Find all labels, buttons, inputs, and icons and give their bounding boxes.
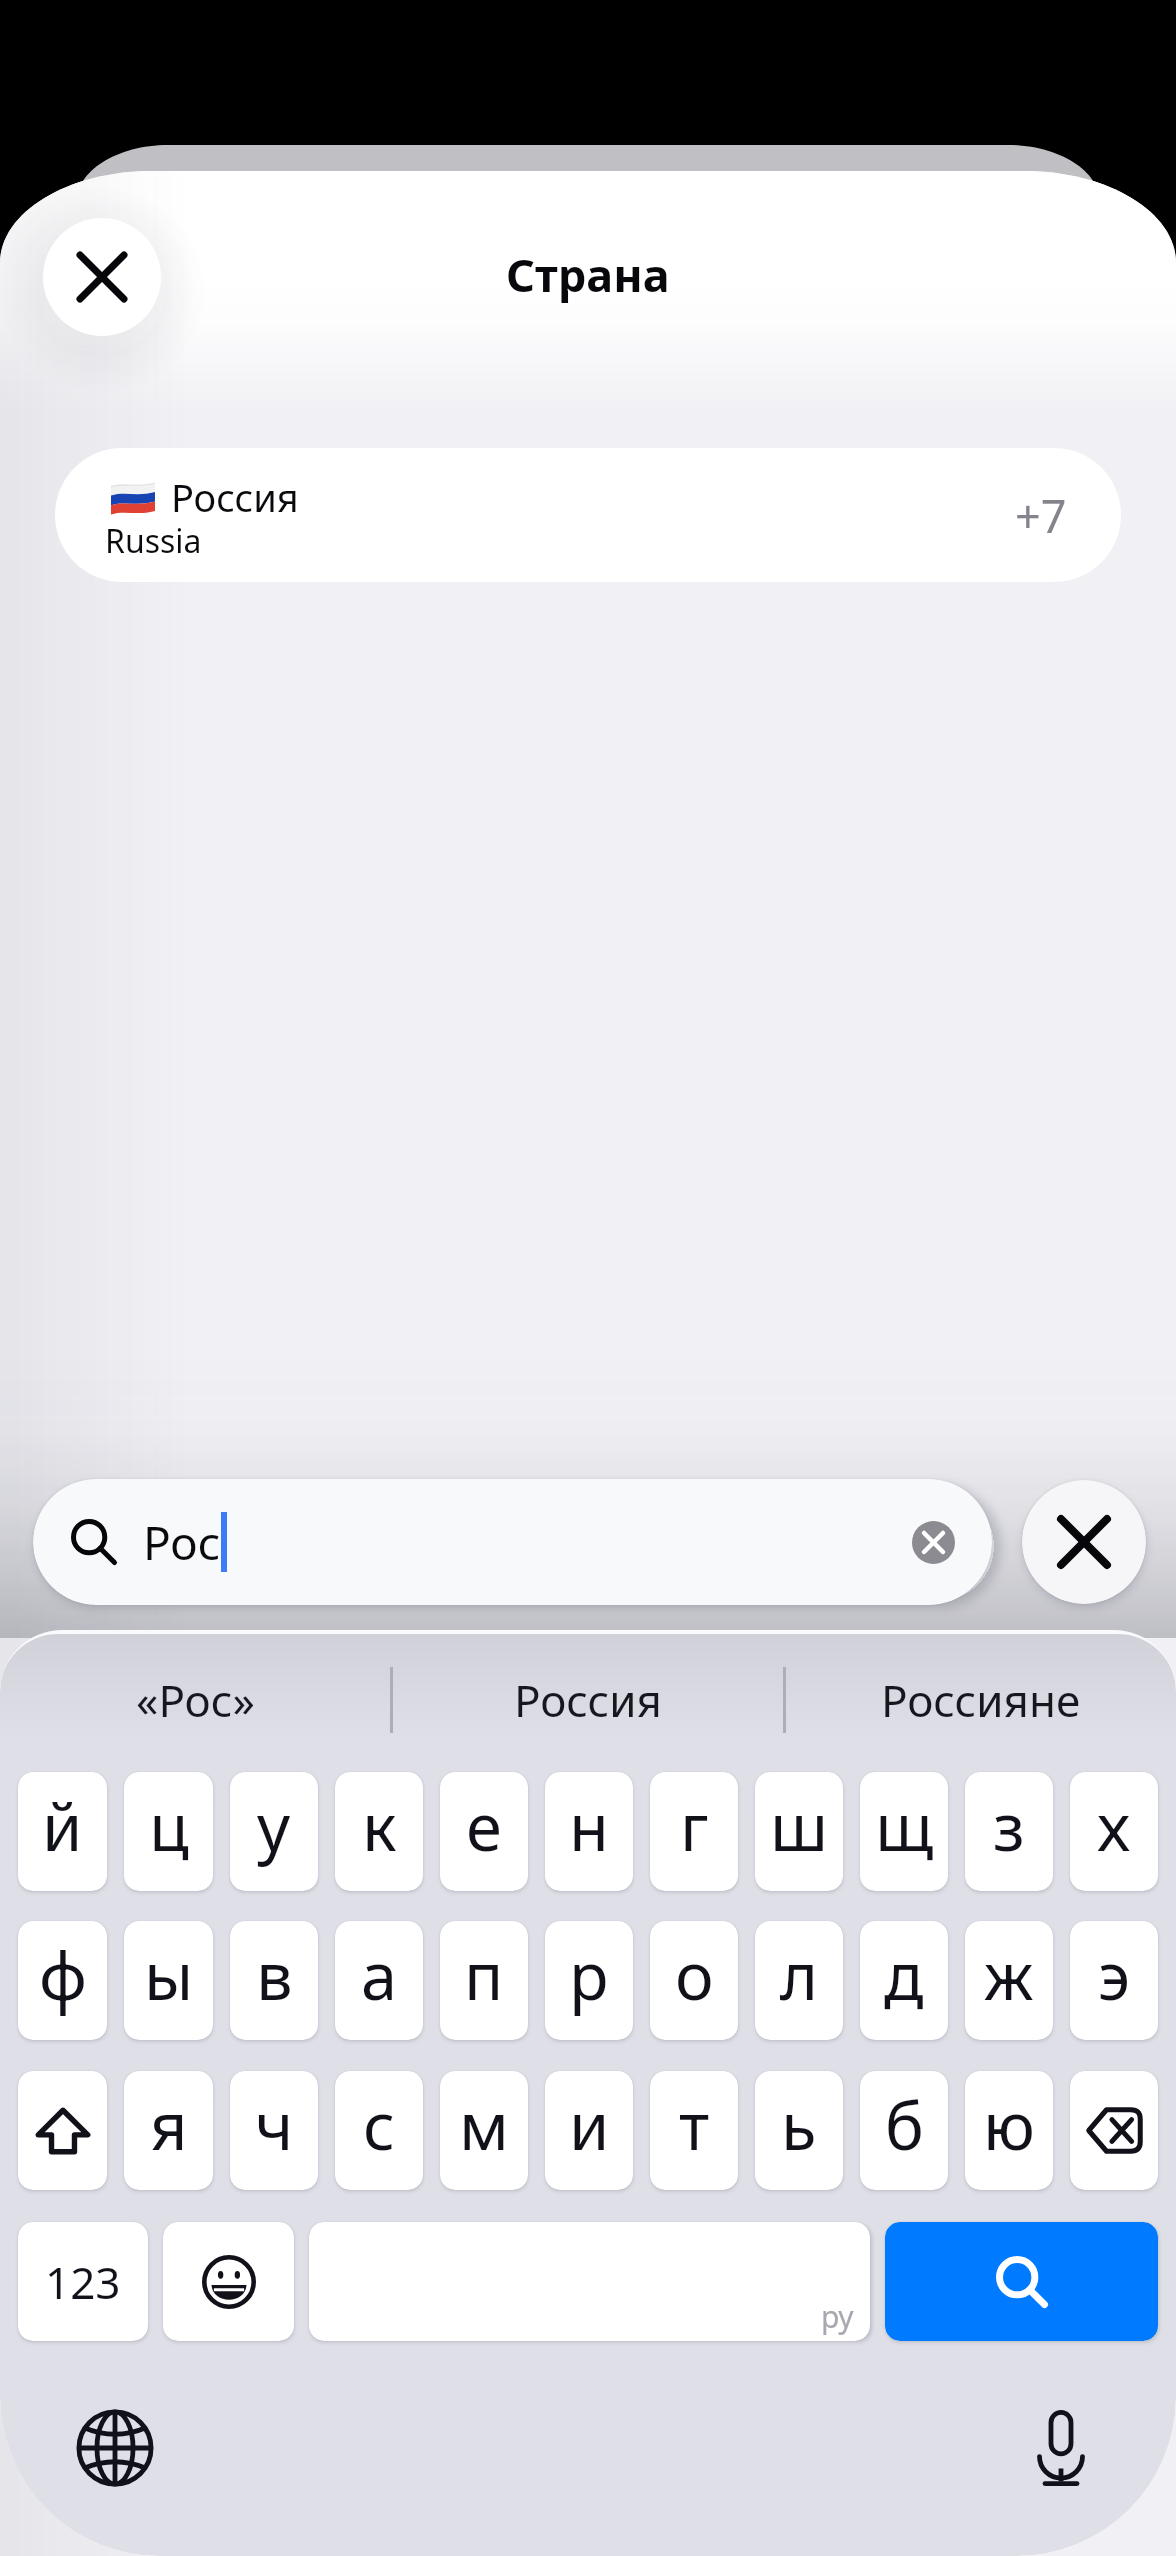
button[interactable]: т [650, 2071, 738, 2190]
button[interactable]: с [335, 2071, 423, 2190]
button[interactable]: х [1070, 1772, 1158, 1891]
button[interactable]: Dismiss keyboard [1022, 1480, 1146, 1604]
staticText: я [150, 2081, 188, 2170]
staticText: г [680, 1782, 709, 1871]
button[interactable]: Shift [18, 2071, 107, 2190]
staticText: п [464, 1931, 504, 2020]
staticText: д [884, 1931, 924, 2020]
staticText: ц [149, 1782, 189, 1871]
staticText: +7 [1015, 485, 1067, 546]
button[interactable]: Dictate [1009, 2396, 1113, 2500]
button[interactable]: Россия [55, 448, 1121, 582]
staticText: и [569, 2081, 610, 2170]
button[interactable]: Emoji [163, 2222, 294, 2341]
staticText: Россияне [881, 1670, 1081, 1730]
staticText: к [362, 1782, 397, 1871]
button[interactable]: Россия [393, 1630, 783, 1770]
button[interactable]: л [755, 1921, 843, 2040]
button[interactable]: о [650, 1921, 738, 2040]
staticText: в [256, 1931, 293, 2020]
staticText: ю [983, 2081, 1035, 2170]
staticText: л [780, 1931, 819, 2020]
staticText: й [42, 1782, 83, 1871]
button[interactable]: Clear text [912, 1521, 955, 1564]
button[interactable]: з [965, 1772, 1053, 1891]
button[interactable]: я [124, 2071, 213, 2190]
button[interactable]: ы [124, 1921, 213, 2040]
staticText: ы [144, 1931, 194, 2020]
staticText: р [569, 1931, 609, 2020]
staticText: с [363, 2081, 396, 2170]
button[interactable]: у [230, 1772, 318, 1891]
staticText: Russia [105, 519, 202, 563]
button[interactable]: Рос [33, 1479, 992, 1605]
button[interactable]: ру [309, 2222, 870, 2341]
staticText: ф [39, 1931, 87, 2020]
button[interactable]: Change keyboard language [63, 2396, 167, 2500]
button[interactable]: д [860, 1921, 948, 2040]
staticText: «Рос» [136, 1670, 255, 1730]
button[interactable]: «Рос» [0, 1630, 390, 1770]
button[interactable]: 123 [18, 2222, 148, 2341]
staticText: т [679, 2081, 710, 2170]
staticText: Рос [143, 1511, 221, 1574]
staticText: э [1098, 1931, 1131, 2020]
button[interactable]: г [650, 1772, 738, 1891]
button[interactable]: к [335, 1772, 423, 1891]
button[interactable]: Backspace [1070, 2071, 1158, 2190]
button[interactable]: ф [18, 1921, 107, 2040]
staticText: Страна [506, 244, 670, 305]
staticText: х [1097, 1782, 1131, 1871]
button[interactable]: р [545, 1921, 633, 2040]
button[interactable]: п [440, 1921, 528, 2040]
button[interactable]: э [1070, 1921, 1158, 2040]
staticText: о [675, 1931, 714, 2020]
button[interactable]: ч [230, 2071, 318, 2190]
button[interactable]: ь [755, 2071, 843, 2190]
staticText: е [466, 1782, 502, 1871]
staticText: ч [255, 2081, 294, 2170]
staticText: м [459, 2081, 509, 2170]
button[interactable]: ю [965, 2071, 1053, 2190]
button[interactable]: ш [755, 1772, 843, 1891]
staticText: Россия [514, 1670, 662, 1730]
staticText: з [993, 1782, 1025, 1871]
button[interactable]: Search [885, 2222, 1158, 2341]
button[interactable]: ж [965, 1921, 1053, 2040]
staticText: щ [875, 1782, 934, 1871]
staticText: б [885, 2081, 924, 2170]
staticText: ь [781, 2081, 817, 2170]
button[interactable]: щ [860, 1772, 948, 1891]
button[interactable]: Close [43, 218, 161, 336]
button[interactable]: н [545, 1772, 633, 1891]
staticText: н [569, 1782, 609, 1871]
staticText: ш [770, 1782, 829, 1871]
staticText: ж [984, 1931, 1034, 2020]
staticText: Россия [171, 471, 299, 523]
button[interactable]: Россияне [786, 1630, 1176, 1770]
button[interactable]: а [335, 1921, 423, 2040]
button[interactable]: и [545, 2071, 633, 2190]
staticText: 123 [45, 2252, 121, 2312]
button[interactable]: й [18, 1772, 107, 1891]
button[interactable]: ц [124, 1772, 213, 1891]
button[interactable]: б [860, 2071, 948, 2190]
staticText: у [257, 1782, 291, 1871]
staticText: ру [821, 2296, 854, 2337]
button[interactable]: е [440, 1772, 528, 1891]
staticText: а [361, 1931, 398, 2020]
button[interactable]: в [230, 1921, 318, 2040]
button[interactable]: м [440, 2071, 528, 2190]
